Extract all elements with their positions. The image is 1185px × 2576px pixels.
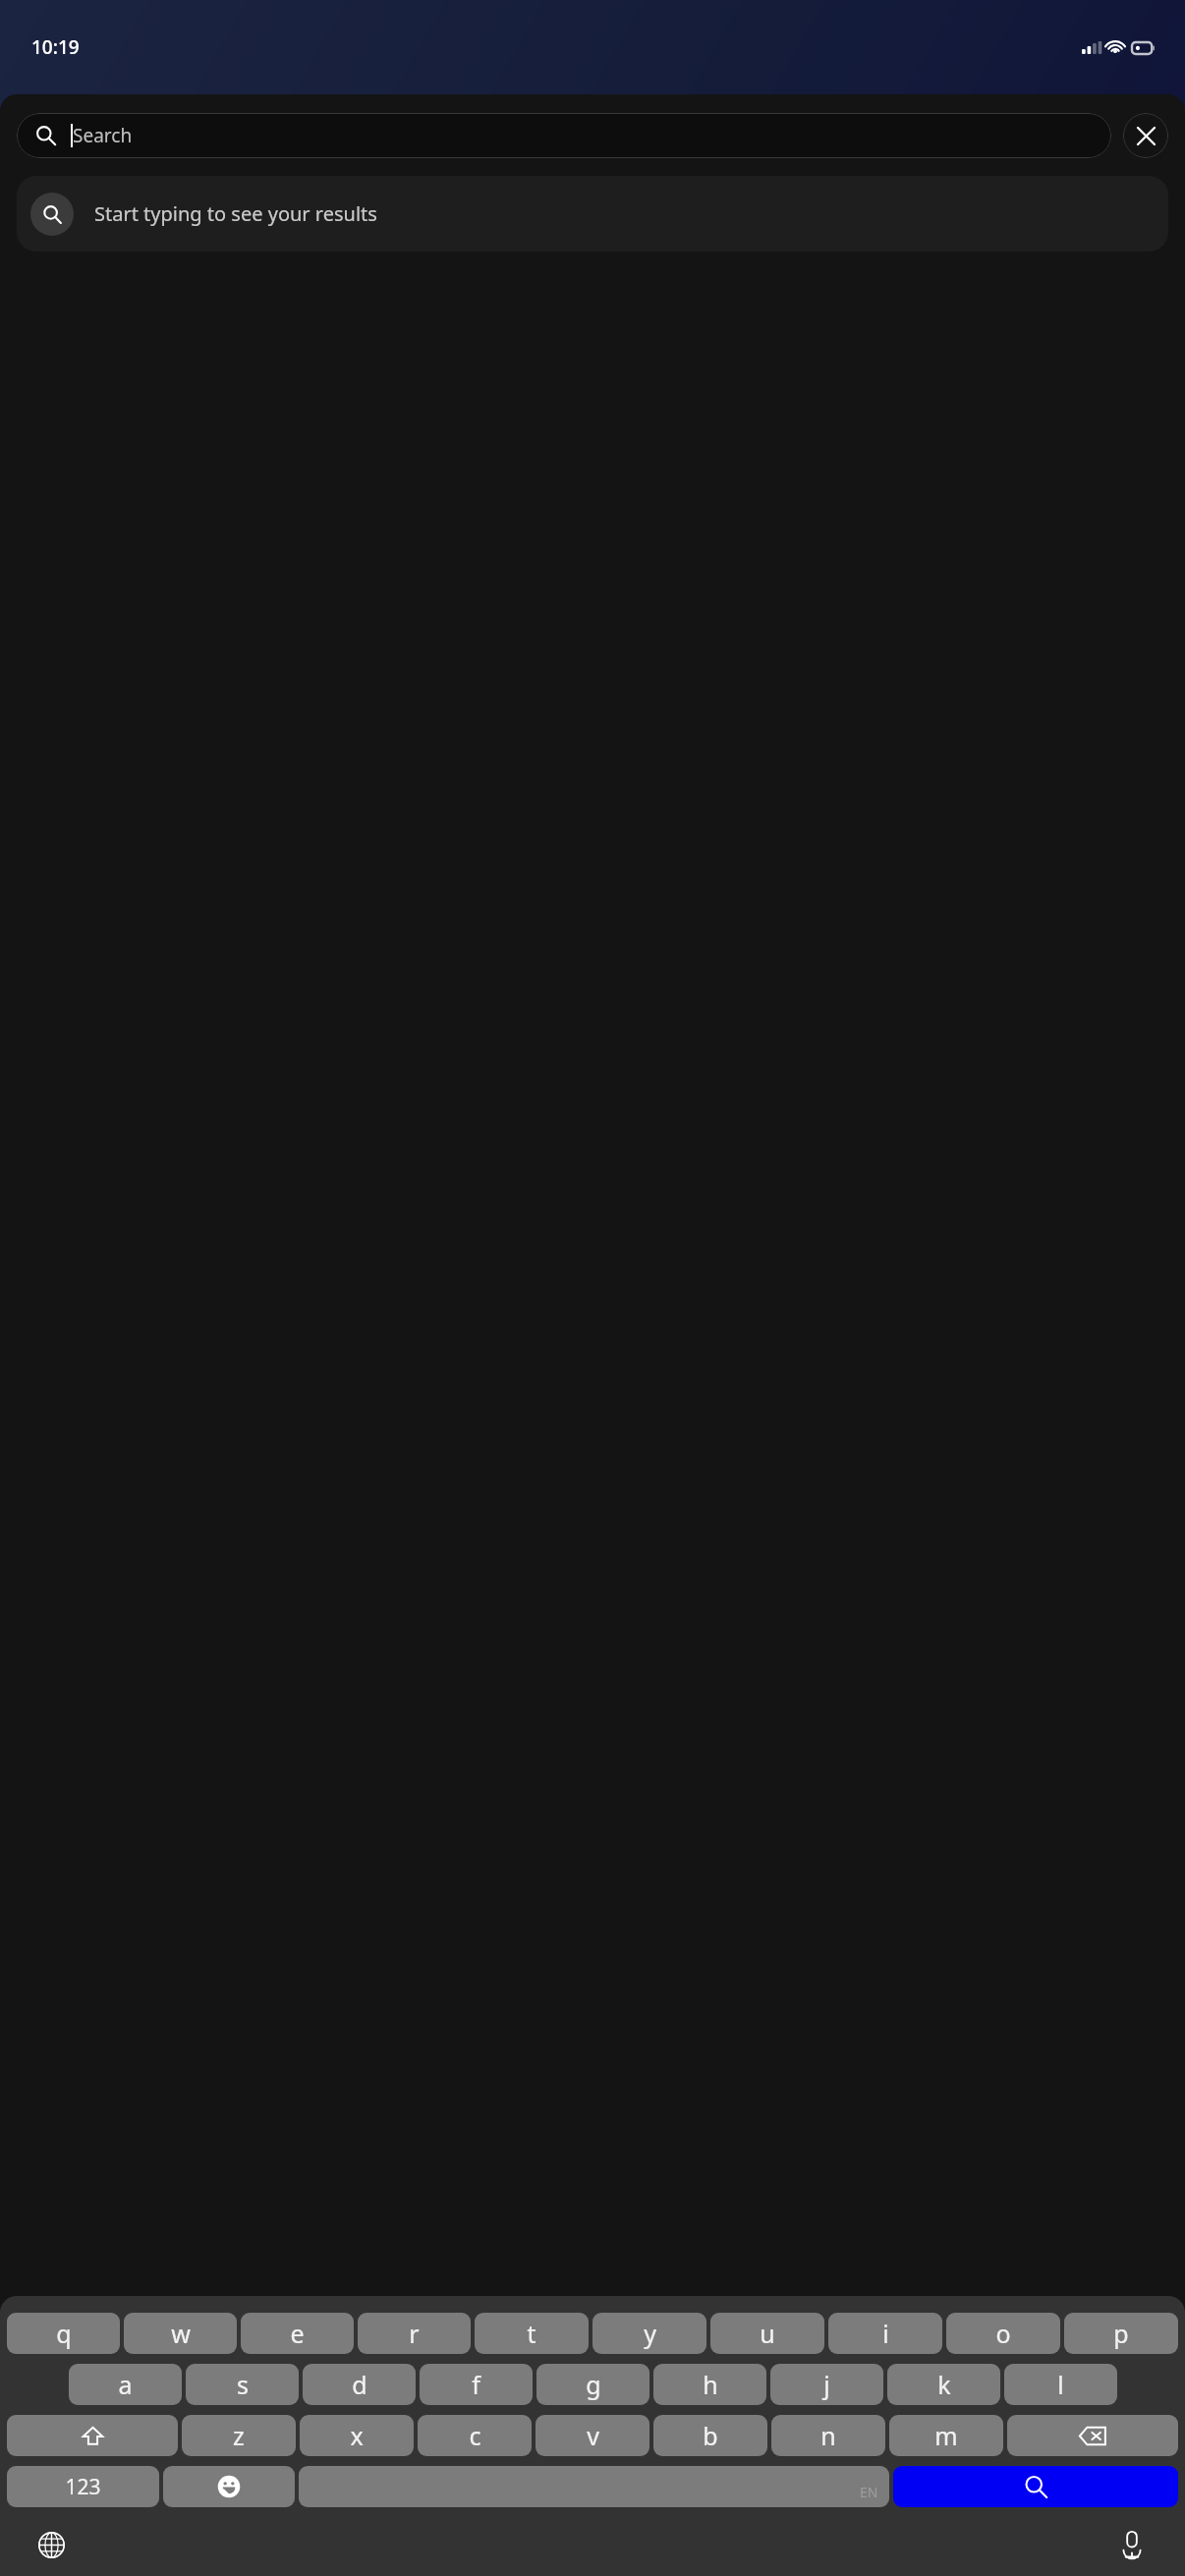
staticText: EN xyxy=(860,2483,878,2501)
staticText: i xyxy=(882,2317,889,2350)
staticText: b xyxy=(703,2419,718,2452)
staticText: e xyxy=(290,2317,305,2350)
button[interactable]: Shift xyxy=(7,2415,178,2456)
button[interactable]: y xyxy=(592,2313,706,2354)
staticText: m xyxy=(934,2419,958,2452)
button[interactable]: Close search xyxy=(1123,113,1168,158)
button[interactable]: o xyxy=(946,2313,1060,2354)
button[interactable]: Voice input xyxy=(1104,2517,1159,2572)
staticText: j xyxy=(823,2368,830,2401)
button[interactable]: q xyxy=(7,2313,120,2354)
button[interactable]: l xyxy=(1004,2364,1117,2405)
button[interactable]: h xyxy=(653,2364,766,2405)
button[interactable]: z xyxy=(182,2415,296,2456)
button[interactable]: Start typing to see your results xyxy=(17,176,1168,252)
button[interactable]: b xyxy=(653,2415,767,2456)
staticText: h xyxy=(703,2368,718,2401)
staticText: o xyxy=(995,2317,1011,2350)
button[interactable]: Space xyxy=(299,2466,889,2507)
staticText: u xyxy=(760,2317,775,2350)
button[interactable]: k xyxy=(887,2364,1000,2405)
button[interactable]: 123 xyxy=(7,2466,159,2507)
staticText: f xyxy=(472,2368,480,2401)
staticText: q xyxy=(56,2317,72,2350)
staticText: t xyxy=(527,2317,536,2350)
button[interactable]: s xyxy=(186,2364,299,2405)
button[interactable]: v xyxy=(536,2415,649,2456)
staticText: a xyxy=(118,2368,133,2401)
staticText: d xyxy=(352,2368,367,2401)
button[interactable]: m xyxy=(889,2415,1003,2456)
staticText: z xyxy=(233,2419,245,2452)
staticText: p xyxy=(1113,2317,1129,2350)
staticText: k xyxy=(937,2368,951,2401)
button[interactable]: p xyxy=(1064,2313,1178,2354)
staticText: l xyxy=(1057,2368,1064,2401)
staticText: s xyxy=(237,2368,249,2401)
button[interactable]: g xyxy=(536,2364,649,2405)
staticText: y xyxy=(644,2317,656,2350)
button[interactable]: r xyxy=(358,2313,471,2354)
button[interactable]: Search xyxy=(893,2466,1178,2507)
button[interactable]: j xyxy=(770,2364,883,2405)
button[interactable]: a xyxy=(69,2364,182,2405)
button[interactable]: d xyxy=(303,2364,416,2405)
button[interactable]: e xyxy=(241,2313,354,2354)
button[interactable]: i xyxy=(828,2313,942,2354)
staticText: c xyxy=(469,2419,481,2452)
button[interactable]: w xyxy=(124,2313,237,2354)
staticText: g xyxy=(586,2368,601,2401)
staticText: v xyxy=(587,2419,599,2452)
button[interactable]: n xyxy=(771,2415,885,2456)
button[interactable]: f xyxy=(420,2364,533,2405)
staticText: w xyxy=(171,2317,191,2350)
button[interactable]: t xyxy=(475,2313,589,2354)
staticText: n xyxy=(820,2419,836,2452)
staticText: 123 xyxy=(65,2473,101,2501)
button[interactable]: Emoji xyxy=(163,2466,295,2507)
button[interactable]: u xyxy=(710,2313,824,2354)
staticText: x xyxy=(350,2419,364,2452)
button[interactable]: Backspace xyxy=(1007,2415,1178,2456)
staticText: Start typing to see your results xyxy=(94,200,377,227)
button[interactable]: Change language xyxy=(24,2517,79,2572)
staticText: Search xyxy=(73,123,133,148)
staticText: 10:19 xyxy=(31,34,80,60)
button[interactable]: x xyxy=(300,2415,414,2456)
button[interactable]: Search xyxy=(17,113,1111,158)
button[interactable]: c xyxy=(418,2415,532,2456)
staticText: r xyxy=(409,2317,420,2350)
